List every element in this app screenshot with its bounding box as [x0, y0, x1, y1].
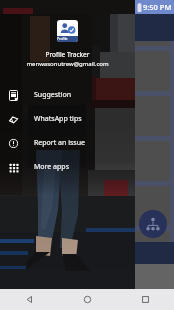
button[interactable]: More apps: [0, 155, 135, 179]
button[interactable]: Back: [0, 289, 58, 310]
staticText: Profile Tracker: [0, 50, 135, 59]
button[interactable]: [4, 51, 170, 91]
staticText: Profile Tracker: [57, 36, 78, 42]
button[interactable]: Recent apps: [116, 289, 174, 310]
button[interactable]: Home: [58, 289, 116, 310]
staticText: 9:50 PM: [143, 2, 172, 12]
staticText: More apps: [34, 162, 69, 172]
button[interactable]: [4, 186, 170, 226]
staticText: WhatsApp tips: [34, 114, 82, 124]
button[interactable]: [4, 141, 170, 181]
staticText: menwasonutrew@gmail.com: [0, 60, 135, 68]
button[interactable]: Report an issue: [0, 131, 135, 155]
button[interactable]: WhatsApp tips: [0, 107, 135, 131]
button[interactable]: [4, 96, 170, 136]
staticText: Suggestion: [34, 90, 71, 100]
button[interactable]: Share: [139, 210, 167, 238]
staticText: Report an issue: [34, 138, 85, 148]
button[interactable]: Profile Tracker app icon: [57, 20, 78, 42]
button[interactable]: Suggestion: [0, 83, 135, 107]
